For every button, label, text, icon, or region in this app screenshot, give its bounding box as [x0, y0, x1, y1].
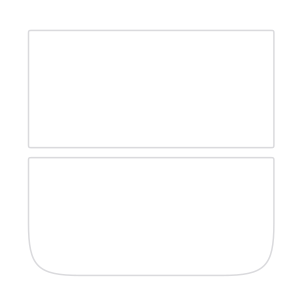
button[interactable]: Card 2 — [28, 158, 274, 275]
button[interactable]: Card 1 — [28, 30, 274, 148]
